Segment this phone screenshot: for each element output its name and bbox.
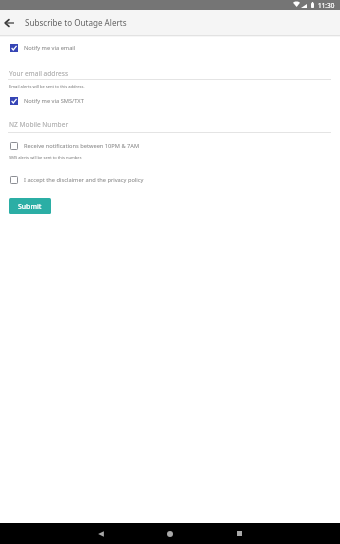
staticText: I accept the disclaimer and the privacy …	[24, 176, 144, 184]
button[interactable]: Back	[90, 523, 112, 544]
button[interactable]: Receive notifications between 10PM & 7AM	[10, 141, 332, 151]
staticText: 11:30	[318, 1, 335, 10]
button[interactable]: Recents	[228, 523, 250, 544]
staticText: NZ Mobile Number	[9, 120, 69, 129]
button[interactable]: Notify me via email	[10, 43, 332, 53]
staticText: Email alerts will be sent to this addres…	[9, 84, 85, 90]
staticText: Submit	[18, 202, 42, 211]
button[interactable]: Submit	[9, 198, 51, 214]
staticText: Notify me via SMS/TXT	[24, 97, 84, 105]
staticText: Notify me via email	[24, 44, 76, 52]
staticText: Receive notifications between 10PM & 7AM	[24, 142, 140, 150]
button[interactable]: Back	[0, 10, 19, 35]
button[interactable]: I accept the disclaimer and the privacy …	[10, 175, 332, 185]
button[interactable]: Home	[159, 523, 181, 544]
staticText: Subscribe to Outage Alerts	[25, 17, 127, 28]
button[interactable]: Notify me via SMS/TXT	[10, 96, 332, 106]
staticText: Your email address	[9, 69, 69, 78]
staticText: SMS alerts will be sent to this number.	[9, 155, 82, 161]
